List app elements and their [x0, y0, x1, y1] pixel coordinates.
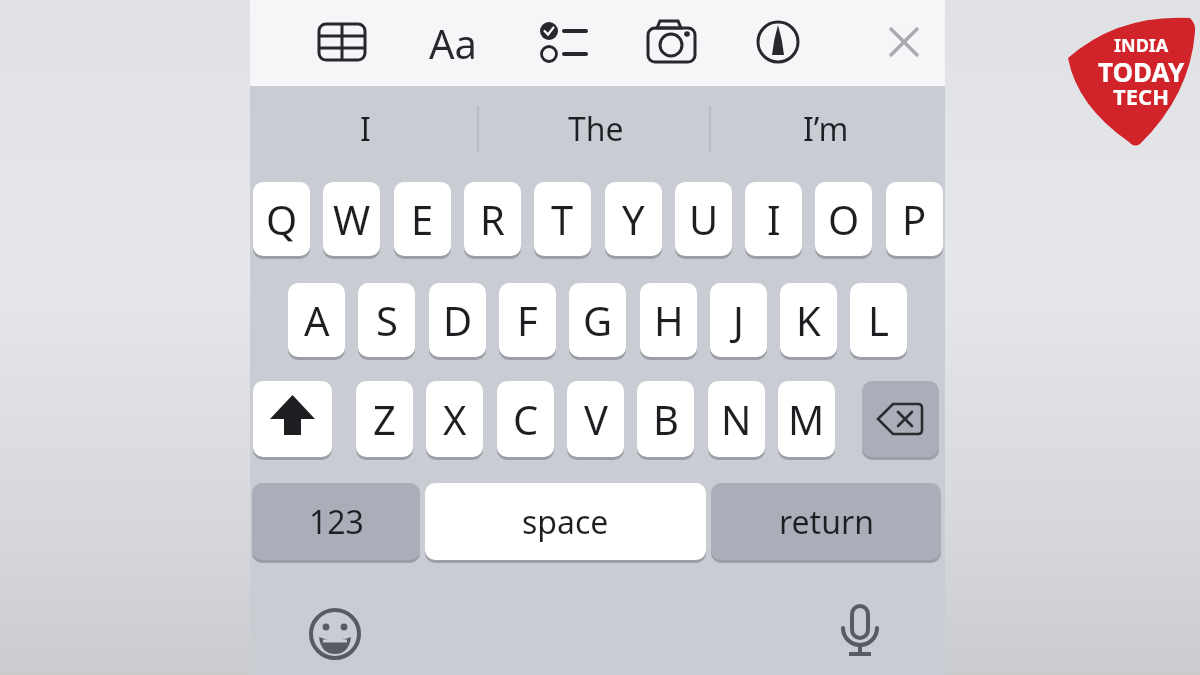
button[interactable]: B [637, 381, 694, 457]
button[interactable]: I [745, 182, 802, 256]
button[interactable] [253, 381, 332, 457]
staticText: V [584, 392, 608, 446]
button[interactable]: X [426, 381, 483, 457]
staticText: I [767, 192, 781, 246]
staticText: M [788, 392, 825, 446]
staticText: I’m [803, 107, 849, 151]
button[interactable]: A [288, 283, 345, 357]
button[interactable]: Q [253, 182, 310, 256]
button[interactable]: S [358, 283, 415, 357]
staticText: I [360, 107, 371, 151]
button[interactable]: R [464, 182, 521, 256]
button[interactable] [878, 15, 934, 71]
button[interactable] [535, 15, 595, 71]
staticText: Q [266, 192, 298, 246]
staticText: K [796, 293, 821, 347]
button[interactable]: E [394, 182, 451, 256]
staticText: G [583, 293, 613, 347]
button[interactable] [305, 604, 365, 664]
button[interactable]: U [675, 182, 732, 256]
button[interactable] [832, 598, 888, 662]
staticText: O [828, 192, 860, 246]
staticText: return [779, 500, 874, 544]
button[interactable]: J [710, 283, 767, 357]
staticText: The [568, 107, 624, 151]
staticText: H [654, 293, 684, 347]
staticText: S [376, 293, 398, 347]
button[interactable] [642, 15, 702, 71]
staticText: space [522, 500, 609, 544]
button[interactable]: I’m [770, 96, 882, 162]
staticText: T [551, 192, 574, 246]
button[interactable]: I [320, 96, 410, 162]
staticText: B [653, 392, 679, 446]
button[interactable]: return [711, 483, 941, 560]
staticText: D [443, 293, 473, 347]
button[interactable] [312, 15, 372, 71]
staticText: Aa [429, 16, 477, 70]
button[interactable]: C [497, 381, 554, 457]
staticText: L [868, 293, 889, 347]
button[interactable]: K [780, 283, 837, 357]
staticText: N [721, 392, 752, 446]
button[interactable]: H [640, 283, 697, 357]
staticText: 123 [309, 500, 364, 544]
button[interactable]: O [815, 182, 872, 256]
staticText: P [902, 192, 927, 246]
button[interactable]: Z [356, 381, 413, 457]
button[interactable]: V [567, 381, 624, 457]
button[interactable]: D [429, 283, 486, 357]
button[interactable]: Aa [420, 10, 486, 76]
staticText: INDIA [1114, 33, 1169, 55]
staticText: J [733, 293, 744, 347]
button[interactable]: G [569, 283, 626, 357]
staticText: TECH [1113, 81, 1169, 105]
button[interactable]: F [499, 283, 556, 357]
staticText: F [517, 293, 538, 347]
staticText: E [411, 192, 434, 246]
button[interactable]: The [540, 96, 652, 162]
staticText: W [333, 192, 371, 246]
button[interactable] [862, 381, 939, 457]
button[interactable]: N [708, 381, 765, 457]
staticText: Y [622, 192, 645, 246]
button[interactable]: T [534, 182, 591, 256]
staticText: C [513, 392, 539, 446]
staticText: TODAY [1098, 54, 1185, 82]
button[interactable]: space [425, 483, 706, 560]
button[interactable] [750, 15, 810, 71]
button[interactable]: L [850, 283, 907, 357]
button[interactable]: Y [605, 182, 662, 256]
button[interactable]: W [323, 182, 380, 256]
button[interactable]: 123 [252, 483, 420, 560]
staticText: A [304, 293, 330, 347]
button[interactable]: M [778, 381, 835, 457]
staticText: R [480, 192, 505, 246]
staticText: X [443, 392, 467, 446]
staticText: Z [373, 392, 396, 446]
button[interactable]: P [886, 182, 943, 256]
staticText: U [689, 192, 719, 246]
